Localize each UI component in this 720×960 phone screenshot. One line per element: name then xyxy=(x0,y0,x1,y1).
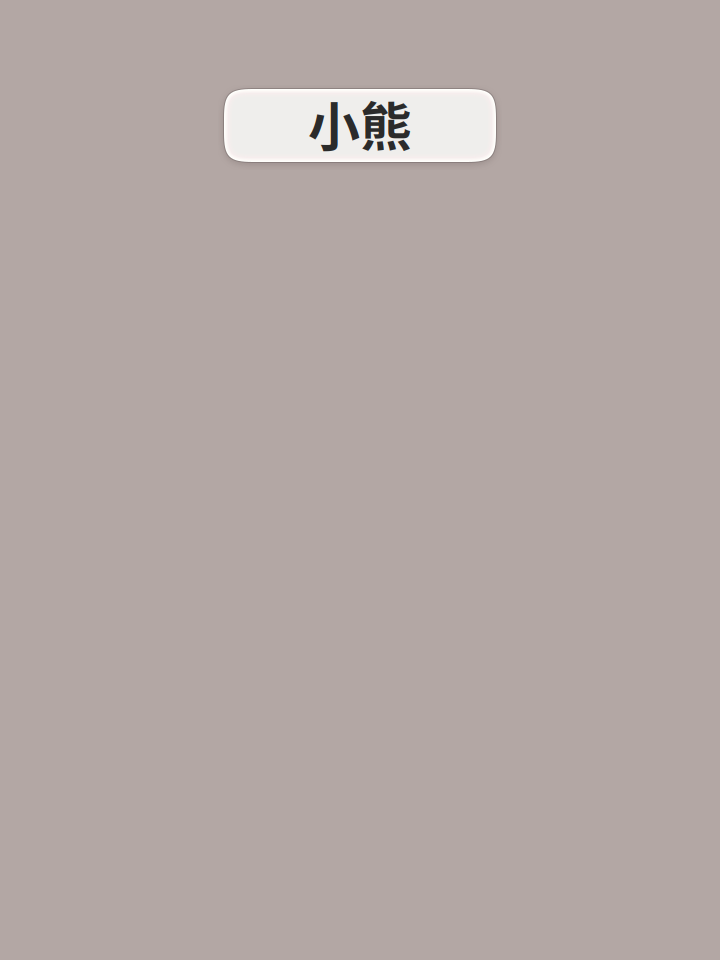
button[interactable]: 小熊 xyxy=(224,89,496,162)
staticText: 小熊 xyxy=(308,86,412,161)
